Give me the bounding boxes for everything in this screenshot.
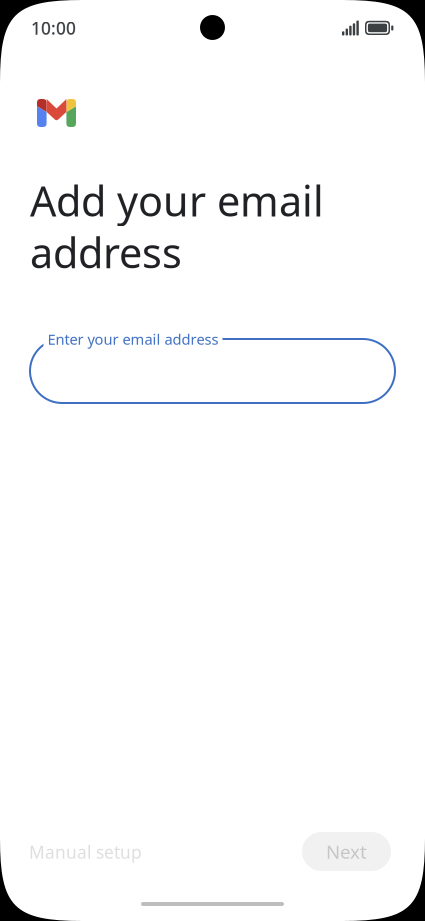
staticText: Enter your email address <box>47 329 218 349</box>
staticText: Next <box>326 839 367 864</box>
staticText: 10:00 <box>31 16 76 39</box>
button[interactable]: Enter your email address <box>30 339 395 403</box>
staticText: Manual setup <box>29 840 142 863</box>
button[interactable]: Manual setup <box>29 832 159 872</box>
staticText: Add your email address <box>30 173 324 280</box>
button[interactable]: Next <box>302 832 391 871</box>
